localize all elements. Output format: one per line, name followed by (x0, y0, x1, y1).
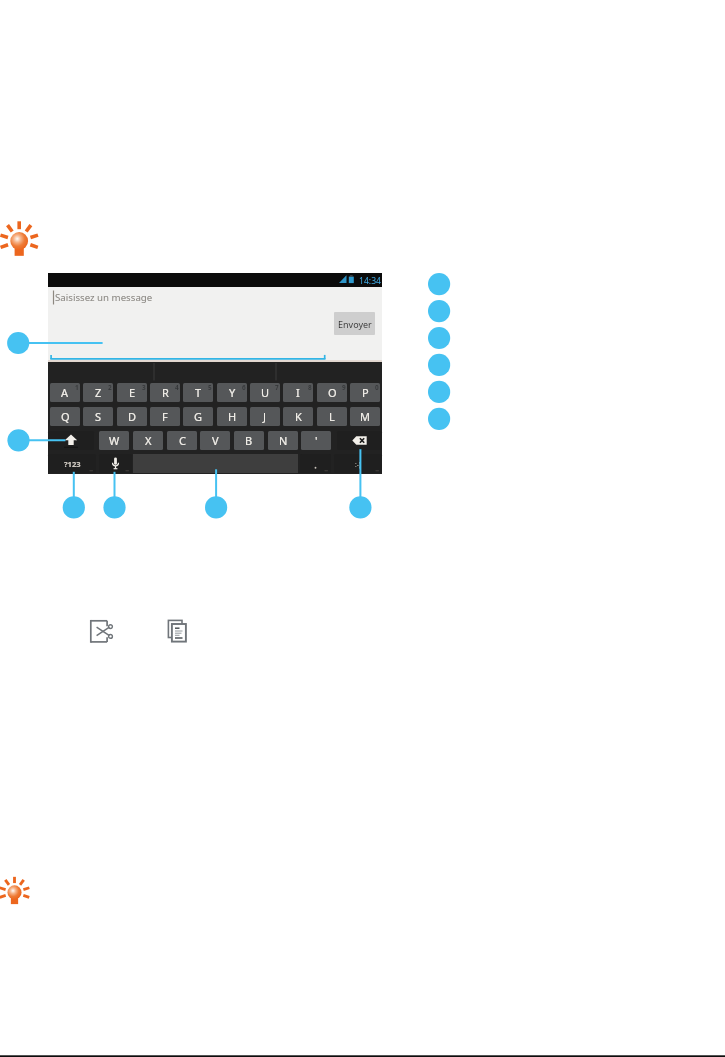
button[interactable]: Annotation 2 (428, 300, 450, 322)
staticText: X (145, 433, 152, 448)
button[interactable]: J (250, 407, 280, 426)
staticText: E (129, 385, 136, 400)
button[interactable]: W (99, 431, 129, 450)
button[interactable]: N (268, 431, 298, 450)
staticText: K (295, 409, 302, 424)
button[interactable]: Backspace (337, 431, 382, 450)
button[interactable]: Q (50, 407, 80, 426)
staticText: A (61, 385, 69, 400)
staticText: ?123 (64, 459, 81, 469)
button[interactable]: I (283, 383, 313, 402)
staticText: N (279, 433, 288, 448)
staticText: ' (315, 433, 318, 448)
button[interactable]: L (317, 407, 347, 426)
staticText: M (360, 409, 370, 424)
staticText: 9 (342, 383, 346, 392)
button[interactable]: X (133, 431, 163, 450)
button[interactable]: Annotation 4 (428, 354, 450, 376)
button[interactable]: H (217, 407, 247, 426)
button[interactable]: Shift (48, 431, 94, 450)
button[interactable]: S (83, 407, 113, 426)
button[interactable]: Period (300, 454, 331, 473)
button[interactable]: Envoyer (334, 312, 375, 335)
staticText: J (263, 409, 267, 424)
staticText: H (228, 409, 237, 424)
staticText: G (194, 409, 203, 424)
staticText: Q (61, 409, 70, 424)
button[interactable]: Emoji (334, 454, 382, 473)
button[interactable]: P (350, 383, 380, 402)
button[interactable]: Annotation 6 (428, 408, 450, 430)
button[interactable]: E (117, 383, 147, 402)
button[interactable]: Voice input (99, 454, 132, 473)
button[interactable]: F (150, 407, 180, 426)
staticText: D (128, 409, 137, 424)
button[interactable]: Symbols (48, 454, 96, 473)
button[interactable]: K (283, 407, 313, 426)
button[interactable]: Annotation 3 (428, 327, 450, 349)
staticText: Envoyer (338, 318, 372, 330)
button[interactable]: D (117, 407, 147, 426)
staticText: I (296, 385, 300, 400)
button[interactable]: Y (217, 383, 247, 402)
staticText: R (162, 385, 169, 400)
button[interactable]: G (183, 407, 213, 426)
button[interactable]: ' (301, 431, 331, 450)
staticText: :-) (355, 460, 361, 469)
staticText: 3 (142, 383, 146, 392)
button[interactable]: Z (83, 383, 113, 402)
button[interactable]: V (200, 431, 230, 450)
button[interactable]: O (317, 383, 347, 402)
button[interactable]: U (250, 383, 280, 402)
staticText: 1 (75, 383, 79, 392)
staticText: W (109, 433, 120, 448)
staticText: 4 (175, 383, 179, 392)
staticText: 8 (308, 383, 312, 392)
staticText: 6 (242, 383, 246, 392)
button[interactable]: Space (133, 454, 298, 473)
staticText: C (179, 433, 186, 448)
staticText: O (328, 385, 337, 400)
staticText: V (212, 433, 219, 448)
staticText: 7 (275, 383, 279, 392)
staticText: P (362, 385, 369, 400)
staticText: 5 (208, 383, 212, 392)
button[interactable]: M (350, 407, 380, 426)
button[interactable]: A (50, 383, 80, 402)
button[interactable]: C (167, 431, 197, 450)
staticText: F (162, 409, 168, 424)
staticText: B (245, 433, 253, 448)
staticText: 2 (108, 383, 112, 392)
staticText: Z (95, 385, 102, 400)
staticText: Saisissez un message (55, 291, 153, 304)
staticText: T (195, 385, 202, 400)
staticText: 14:34 (359, 275, 381, 287)
staticText: S (95, 409, 102, 424)
staticText: U (261, 385, 270, 400)
button[interactable]: Annotation 1 (428, 273, 450, 295)
button[interactable]: Annotation 5 (428, 381, 450, 403)
staticText: 0 (375, 383, 379, 392)
button[interactable]: T (183, 383, 213, 402)
button[interactable]: B (234, 431, 264, 450)
staticText: L (329, 409, 335, 424)
button[interactable]: R (150, 383, 180, 402)
staticText: Y (229, 385, 236, 400)
